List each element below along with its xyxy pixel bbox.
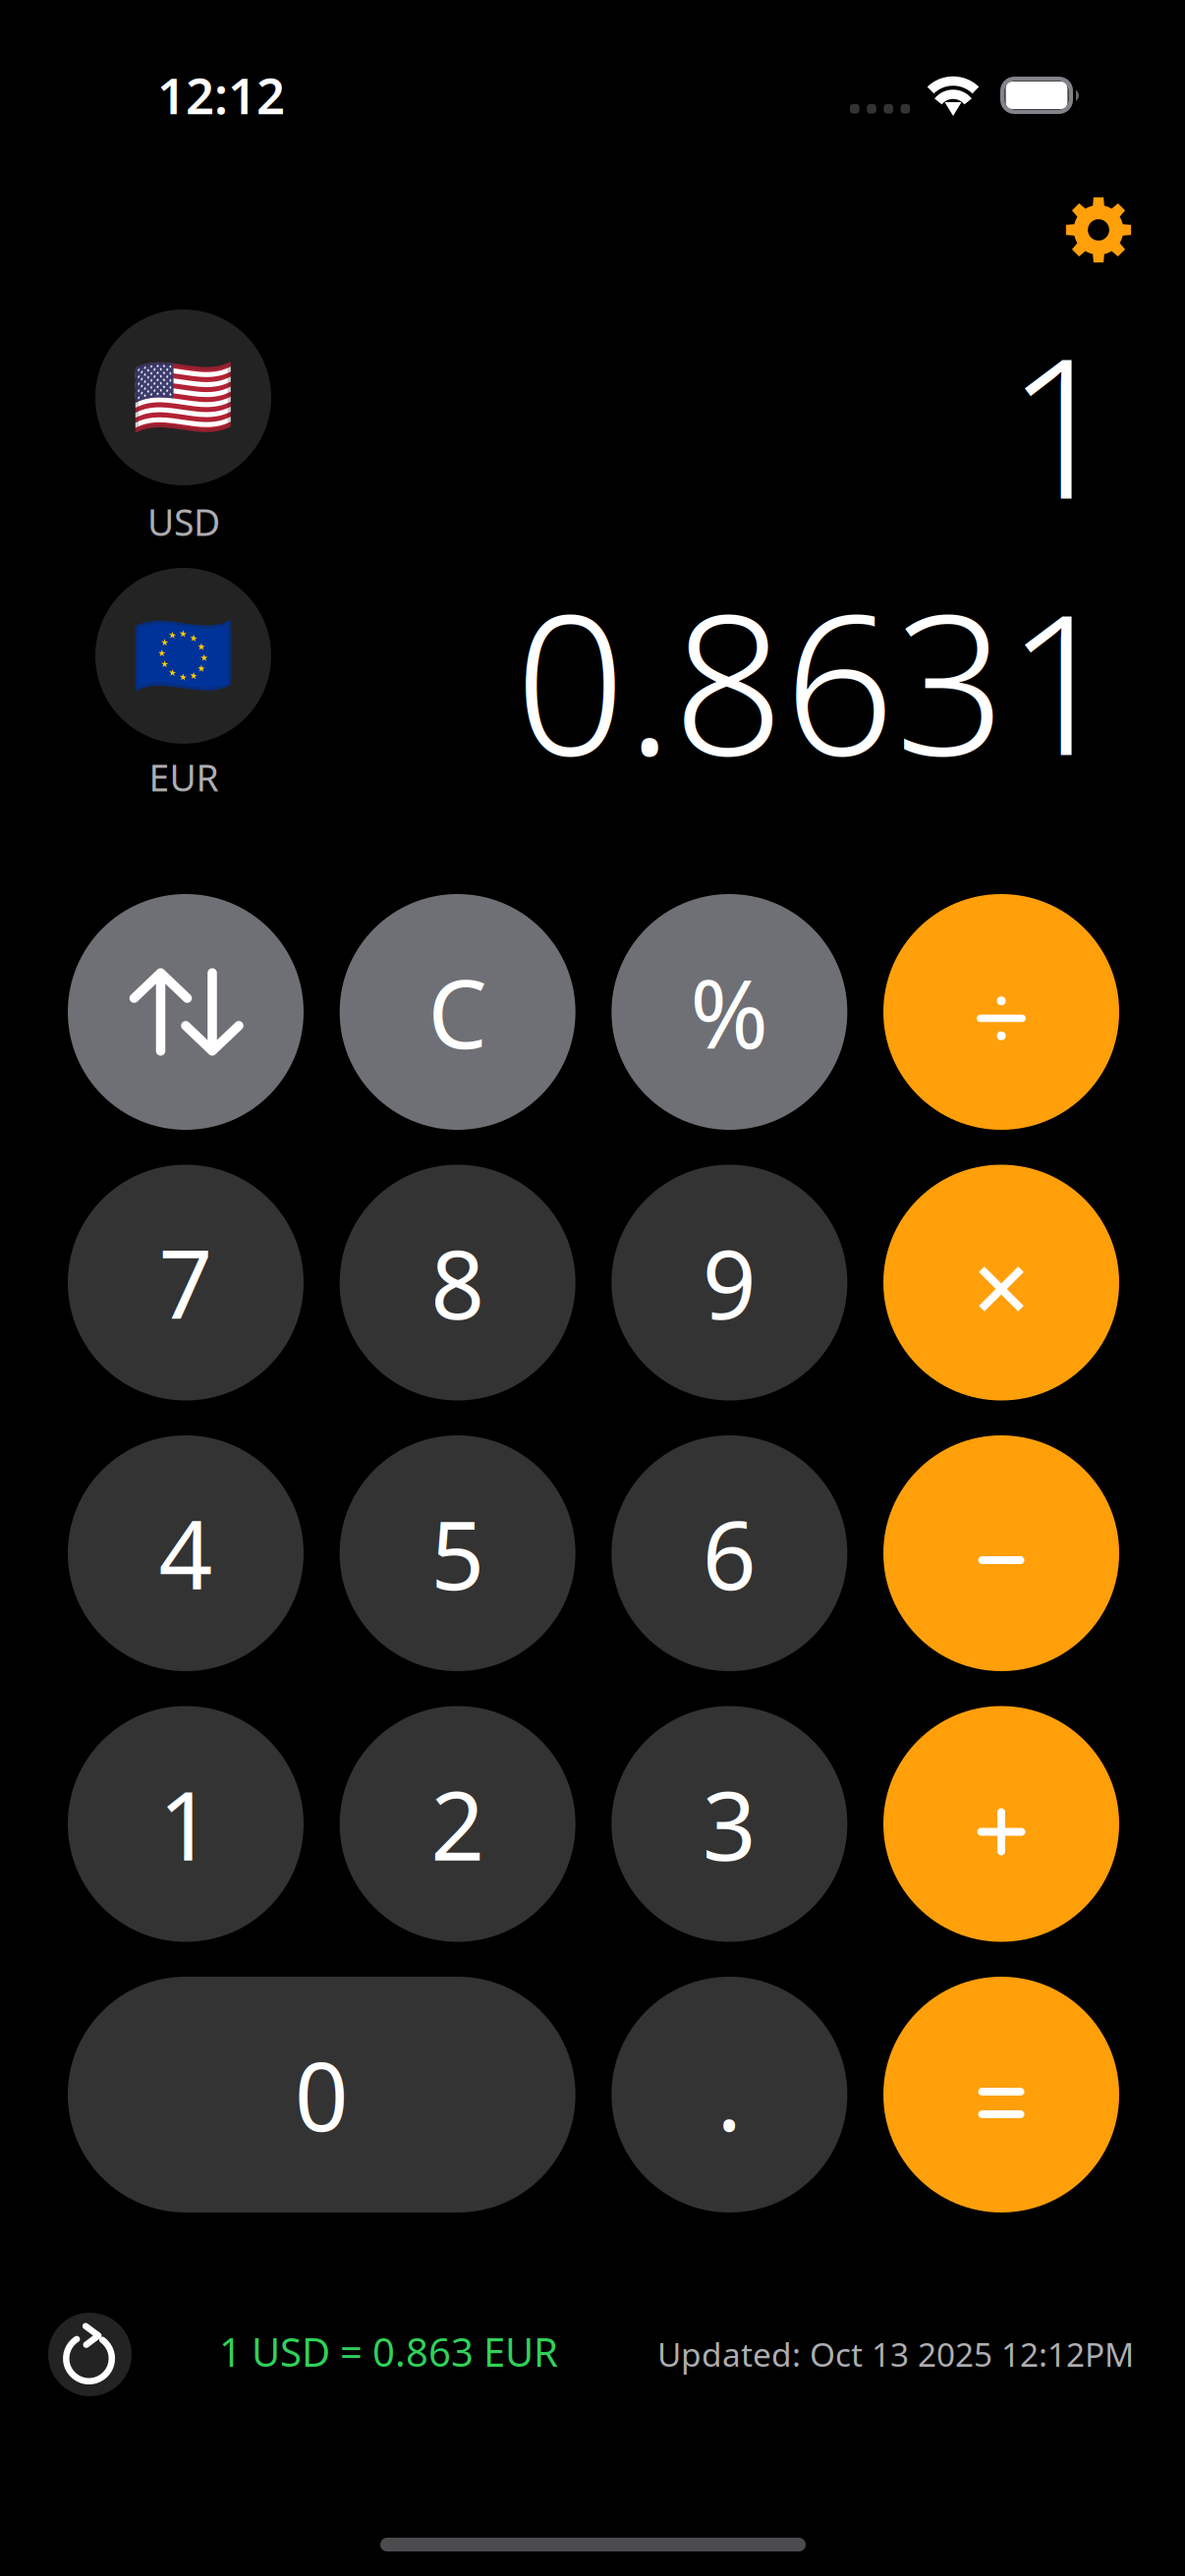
button[interactable]: % <box>611 894 847 1130</box>
staticText: 1 <box>159 1761 213 1887</box>
button[interactable]: 1 <box>68 1706 304 1942</box>
staticText: EUR <box>149 753 219 801</box>
button[interactable]: Refresh exchange rate <box>48 2313 132 2396</box>
button[interactable]: Divide <box>883 894 1119 1130</box>
button[interactable]: 🇺🇸 <box>66 309 302 545</box>
button[interactable]: Settings <box>1040 171 1157 289</box>
button[interactable]: 2 <box>340 1706 576 1942</box>
button[interactable]: Multiply <box>883 1165 1119 1400</box>
button[interactable]: 6 <box>611 1435 847 1671</box>
staticText: % <box>690 949 769 1075</box>
button[interactable]: Swap currencies <box>68 894 304 1130</box>
button[interactable]: 7 <box>68 1165 304 1400</box>
button[interactable]: 5 <box>340 1435 576 1671</box>
button[interactable]: 3 <box>611 1706 847 1942</box>
staticText: 6 <box>702 1491 756 1616</box>
staticText: 7 <box>159 1220 213 1345</box>
staticText: 8 <box>431 1220 485 1345</box>
staticText: . <box>717 2032 742 2157</box>
staticText: 0 <box>295 2032 349 2157</box>
staticText: 3 <box>702 1761 756 1887</box>
staticText: C <box>428 949 488 1075</box>
staticText: 🇺🇸 <box>132 350 235 445</box>
staticText: 🇪🇺 <box>132 609 235 703</box>
staticText: Updated: Oct 13 2025 12:12PM <box>657 2332 1134 2376</box>
staticText: 1 <box>1006 295 1117 552</box>
button[interactable]: . <box>611 1977 847 2212</box>
staticText: 5 <box>431 1491 485 1616</box>
button[interactable]: 4 <box>68 1435 304 1671</box>
button[interactable]: 8 <box>340 1165 576 1400</box>
button[interactable]: 🇪🇺 <box>66 568 302 804</box>
staticText: 9 <box>702 1220 756 1345</box>
button[interactable]: Add <box>883 1706 1119 1942</box>
staticText: 1 USD = 0.863 EUR <box>219 2325 558 2378</box>
button[interactable]: Equals <box>883 1977 1119 2212</box>
staticText: 2 <box>431 1761 485 1887</box>
button[interactable]: C <box>340 894 576 1130</box>
staticText: 4 <box>159 1491 213 1616</box>
staticText: 0.8631 <box>515 551 1117 809</box>
button[interactable]: Subtract <box>883 1435 1119 1671</box>
button[interactable]: 9 <box>611 1165 847 1400</box>
button[interactable]: 0 <box>68 1977 576 2212</box>
staticText: USD <box>147 497 220 546</box>
staticText: 12:12 <box>157 62 285 128</box>
